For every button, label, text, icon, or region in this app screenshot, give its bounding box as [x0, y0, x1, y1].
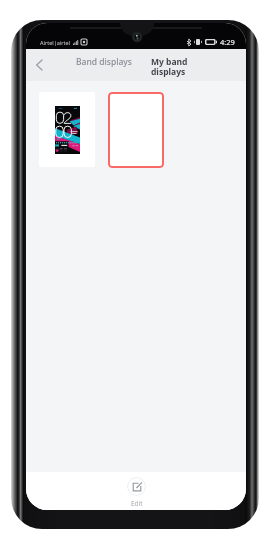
- button[interactable]: [39, 92, 95, 167]
- staticText: My band displays: [151, 56, 188, 77]
- staticText: 4:29: [220, 37, 235, 47]
- button[interactable]: My band displays: [145, 49, 211, 81]
- staticText: Airtel|airtel: [40, 39, 71, 46]
- staticText: Edit: [131, 499, 143, 508]
- button[interactable]: Edit: [127, 477, 146, 508]
- button[interactable]: [108, 92, 164, 168]
- button[interactable]: Band displays: [63, 49, 145, 81]
- staticText: Band displays: [76, 56, 132, 68]
- button[interactable]: Back: [27, 49, 51, 81]
